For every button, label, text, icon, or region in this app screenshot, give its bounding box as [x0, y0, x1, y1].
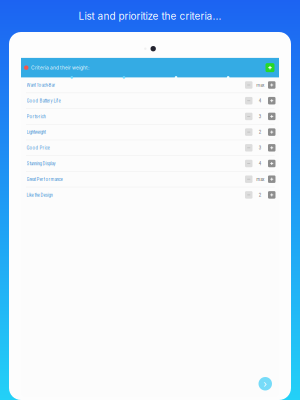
button[interactable]: Increase Good Battery Life [268, 97, 275, 104]
staticText: 2 [259, 192, 262, 198]
button[interactable]: Increase Like the Design [268, 191, 275, 199]
button[interactable]: Increase Ports-rich [268, 113, 275, 120]
button[interactable]: Increase Stunning Display [268, 160, 275, 167]
button[interactable]: Good Battery Life [21, 93, 279, 108]
button[interactable]: Increase Want Touch-Bar [268, 81, 275, 89]
button[interactable]: Great Performance [21, 172, 279, 187]
staticText: Good Battery Life [26, 98, 60, 104]
staticText: Good Price [26, 145, 49, 151]
staticText: 4 [259, 98, 262, 104]
button[interactable]: Increase Lightweight [268, 128, 275, 136]
staticText: 3 [259, 145, 262, 151]
staticText: Stunning Display [26, 160, 55, 166]
button[interactable]: Decrease Good Battery Life [245, 97, 252, 104]
button[interactable]: Ports-rich [21, 109, 279, 124]
button[interactable]: Increase Great Performance [268, 175, 275, 183]
staticText: max [256, 176, 264, 182]
button[interactable]: Decrease Great Performance [245, 175, 252, 183]
button[interactable]: Decrease Ports-rich [245, 113, 252, 120]
staticText: List and prioritize the criteria... [78, 10, 221, 22]
staticText: 4 [259, 160, 262, 166]
staticText: Great Performance [26, 176, 62, 182]
button[interactable]: Lightweight [21, 124, 279, 140]
staticText: Want Touch-Bar [26, 82, 55, 88]
staticText: max [256, 82, 264, 88]
staticText: Criteria and their weight: [31, 65, 89, 70]
button[interactable]: Like the Design [21, 187, 279, 202]
button[interactable]: Decrease Good Price [245, 144, 252, 151]
button[interactable]: Decrease Want Touch-Bar [245, 81, 252, 89]
staticText: Ports-rich [26, 113, 45, 119]
button[interactable]: Increase Good Price [268, 144, 275, 151]
staticText: 2 [259, 129, 262, 135]
button[interactable]: Stunning Display [21, 156, 279, 171]
button[interactable]: Decrease Lightweight [245, 128, 252, 136]
staticText: › [263, 378, 267, 389]
staticText: Lightweight [26, 129, 45, 135]
button[interactable]: Add criterion [265, 63, 274, 72]
staticText: 3 [259, 113, 262, 119]
button[interactable]: Next [258, 377, 272, 390]
button[interactable]: Decrease Like the Design [245, 191, 252, 199]
button[interactable]: Good Price [21, 140, 279, 155]
button[interactable]: Want Touch-Bar [21, 77, 279, 93]
staticText: Like the Design [26, 192, 52, 198]
button[interactable]: Decrease Stunning Display [245, 160, 252, 167]
